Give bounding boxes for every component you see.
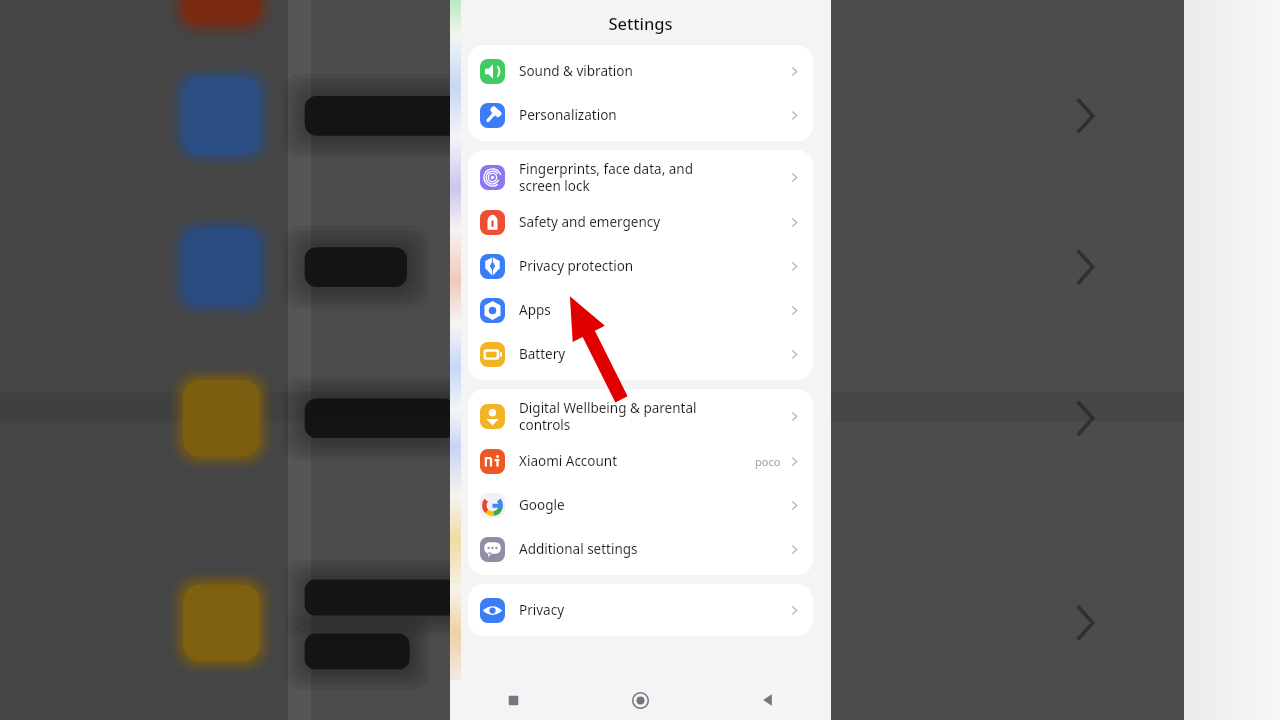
button[interactable]: Privacy protection — [468, 244, 813, 288]
staticText: Xiaomi Account — [519, 452, 618, 470]
staticText: Additional settings — [519, 540, 638, 558]
button[interactable]: Xiaomi Account — [468, 439, 813, 483]
staticText: Digital Wellbeing & parental controls — [519, 399, 697, 434]
button[interactable]: Privacy — [468, 588, 813, 632]
staticText: Battery — [519, 345, 566, 363]
button[interactable]: Back — [704, 680, 831, 720]
button[interactable]: Personalization — [468, 93, 813, 137]
button[interactable]: Sound & vibration — [468, 49, 813, 93]
button[interactable]: Google — [468, 483, 813, 527]
staticText: Privacy — [519, 601, 565, 619]
staticText: Sound & vibration — [519, 62, 633, 80]
button[interactable]: Recent apps — [450, 680, 577, 720]
staticText: Google — [519, 496, 565, 514]
button[interactable]: Fingerprints, face data, and screen lock — [468, 154, 813, 200]
staticText: Apps — [519, 301, 551, 319]
staticText: Safety and emergency — [519, 213, 661, 231]
staticText: Settings — [608, 12, 673, 34]
button[interactable]: Apps — [468, 288, 813, 332]
button[interactable]: Home — [577, 680, 704, 720]
button[interactable]: Battery — [468, 332, 813, 376]
staticText: poco — [755, 454, 781, 469]
staticText: Fingerprints, face data, and screen lock — [519, 160, 693, 195]
button[interactable]: Digital Wellbeing & parental controls — [468, 393, 813, 439]
button[interactable]: Additional settings — [468, 527, 813, 571]
staticText: Privacy protection — [519, 257, 634, 275]
button[interactable]: Safety and emergency — [468, 200, 813, 244]
staticText: Personalization — [519, 106, 617, 124]
